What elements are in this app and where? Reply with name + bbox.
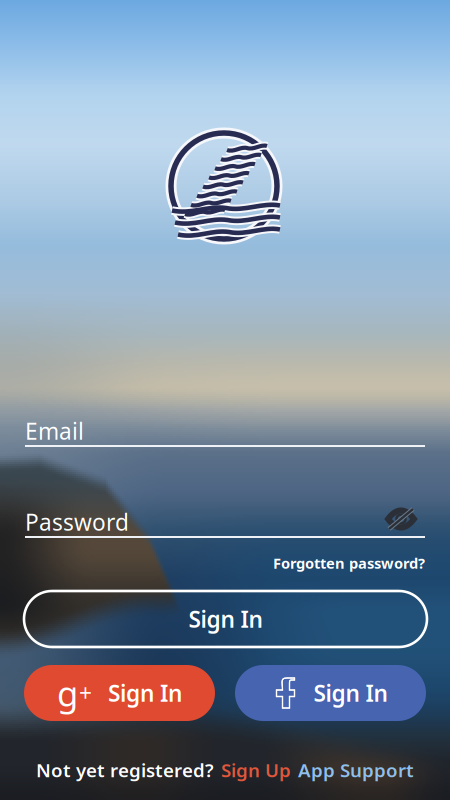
staticText: Sign In — [313, 678, 387, 708]
staticText: Email — [25, 416, 84, 446]
staticText: g — [57, 670, 78, 716]
staticText: Sign In — [188, 604, 262, 634]
button[interactable]: App Support — [298, 758, 414, 782]
staticText: App Support — [298, 758, 414, 782]
staticText: Forgotten password? — [273, 553, 425, 573]
button[interactable]: Forgotten password? — [25, 552, 425, 574]
staticText: Sign In — [108, 678, 182, 708]
staticText: Not yet registered? — [36, 758, 214, 782]
button[interactable]: Sign Up — [221, 758, 291, 782]
button[interactable]: Sign In — [24, 591, 427, 647]
staticText: Sign Up — [221, 758, 291, 782]
staticText: Password — [25, 507, 129, 537]
button[interactable]: g — [24, 665, 215, 721]
button[interactable]: Sign In — [235, 665, 426, 721]
button[interactable]: Show password — [379, 499, 423, 539]
staticText: + — [79, 678, 92, 708]
